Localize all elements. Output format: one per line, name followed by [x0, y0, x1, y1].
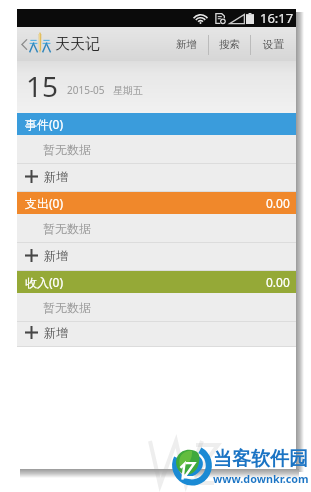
staticText: 新增 [176, 38, 197, 51]
button[interactable]: 新增 [165, 27, 208, 61]
staticText: www.downkr.com [213, 471, 309, 486]
button[interactable]: 搜索 [209, 27, 250, 61]
staticText: 暂无数据 [43, 300, 91, 315]
staticText: 0.00 [266, 274, 290, 290]
staticText: 天天记 [55, 35, 100, 54]
button[interactable]: 暂无数据 [17, 214, 296, 243]
button[interactable]: 新增 [17, 243, 296, 271]
staticText: 15 [26, 67, 59, 105]
other: Wi-Fi [194, 14, 207, 24]
button[interactable]: 暂无数据 [17, 135, 296, 164]
staticText: 新增 [44, 248, 68, 263]
button[interactable]: 新增 [17, 322, 296, 347]
staticText: 2015-05 [67, 83, 105, 97]
button[interactable]: 收入(0) [17, 271, 296, 293]
staticText: 16:17 [260, 9, 294, 27]
button[interactable]: 事件(0) [17, 113, 296, 135]
staticText: 当客软件园 [213, 447, 308, 471]
staticText: 新增 [44, 169, 68, 184]
staticText: 收入(0) [25, 274, 64, 290]
button[interactable]: 支出(0) [17, 192, 296, 214]
staticText: 0.00 [266, 195, 290, 211]
staticText: 搜索 [219, 38, 240, 51]
staticText: 暂无数据 [43, 221, 91, 236]
other: Back [21, 39, 27, 50]
staticText: 星期五 [113, 84, 143, 97]
button[interactable]: 设置 [251, 27, 296, 61]
staticText: 设置 [263, 38, 284, 51]
button[interactable]: 暂无数据 [17, 293, 296, 322]
staticText: 新增 [44, 325, 68, 340]
button[interactable]: Back [17, 27, 104, 61]
button[interactable]: 新增 [17, 164, 296, 192]
staticText: 事件(0) [25, 116, 64, 132]
staticText: 暂无数据 [43, 142, 91, 157]
staticText: 支出(0) [25, 195, 64, 211]
